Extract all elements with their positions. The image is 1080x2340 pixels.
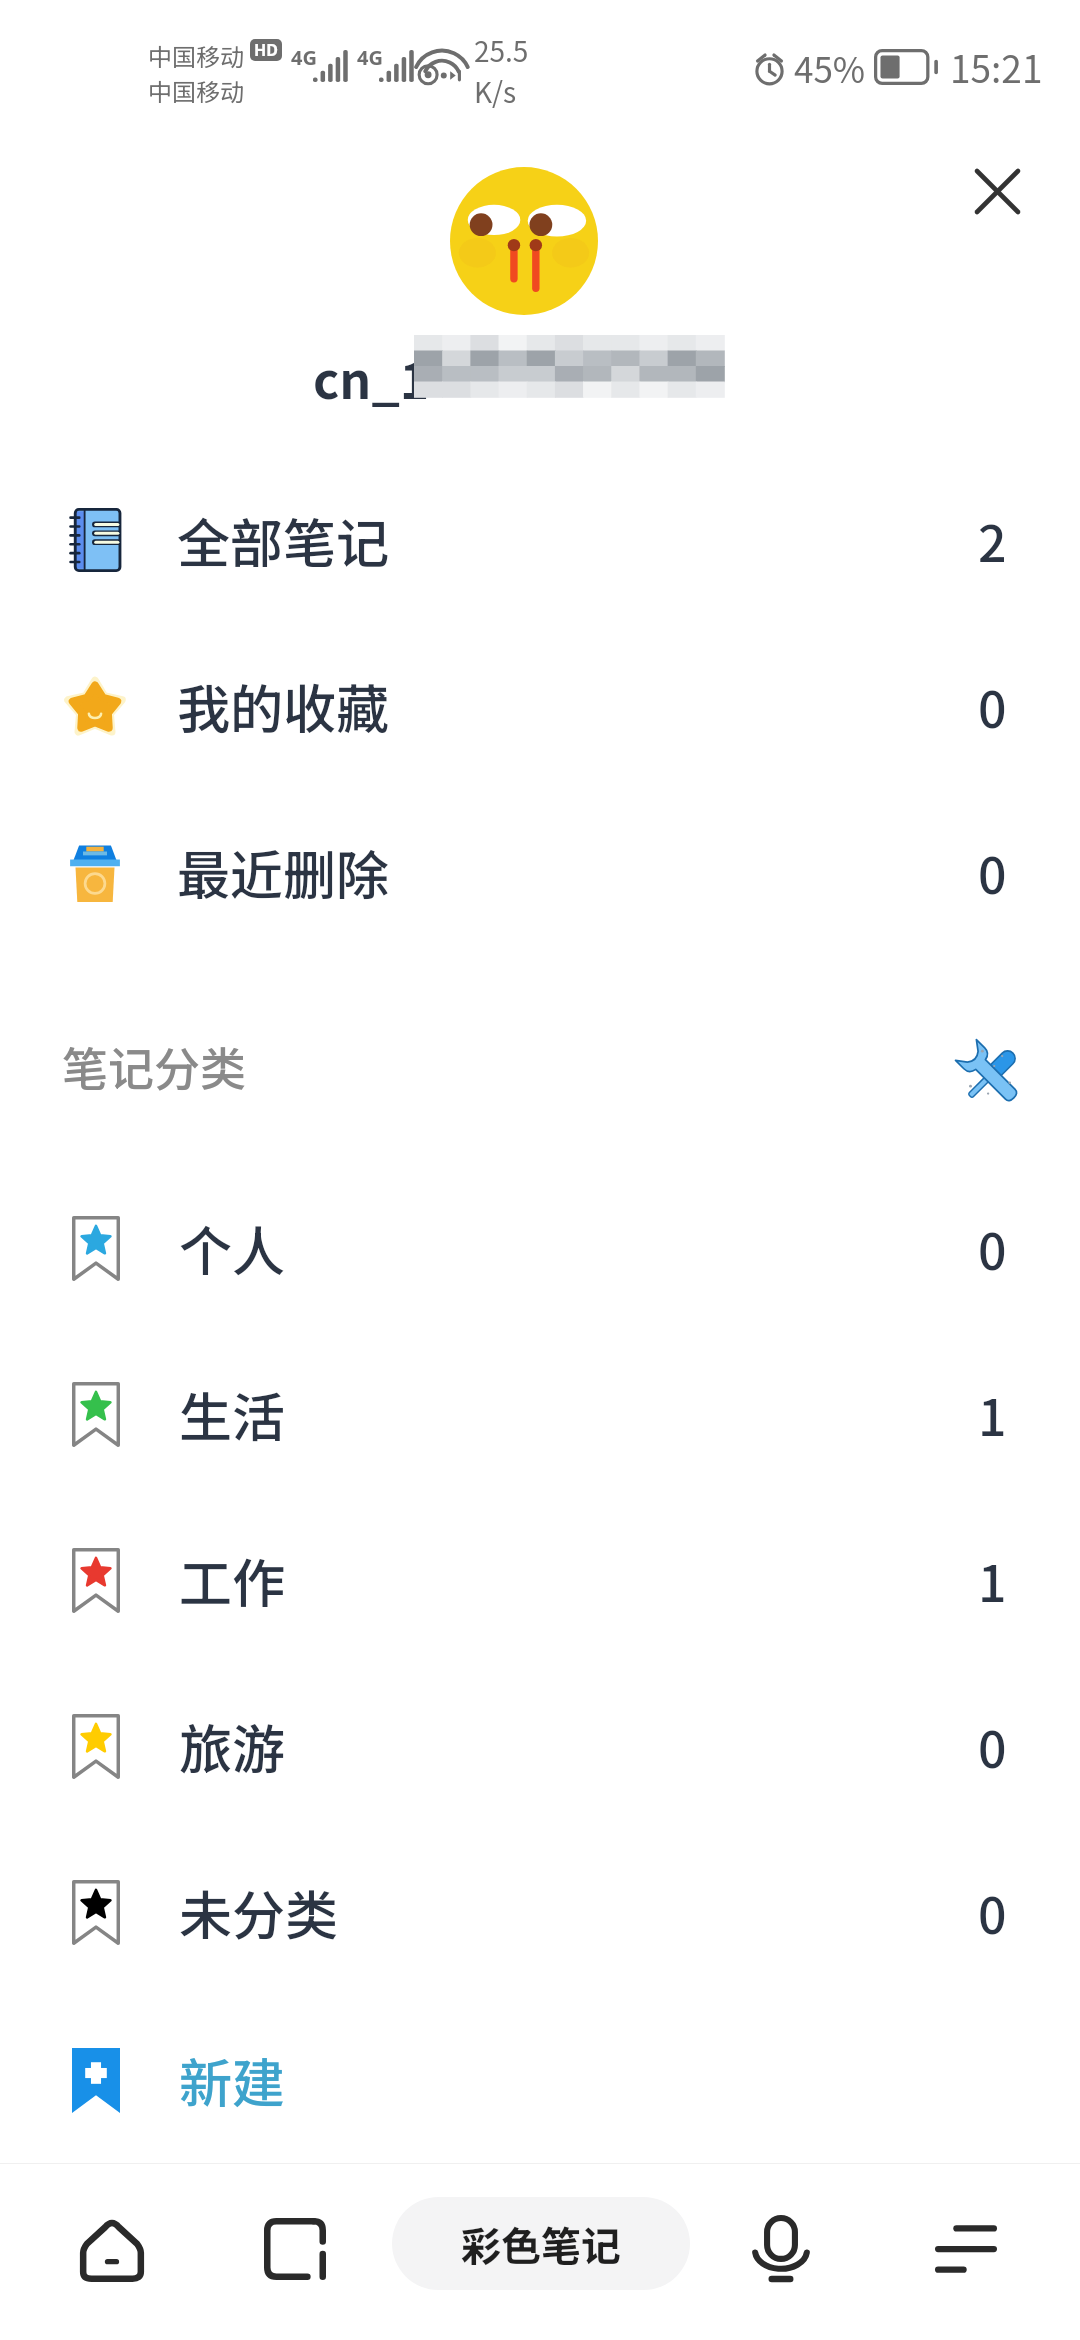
staticText: 未分类: [179, 1874, 338, 1951]
staticText: 1: [978, 1378, 1007, 1450]
staticText: 15:21: [950, 40, 1043, 94]
button[interactable]: 生活: [0, 1331, 1080, 1497]
button[interactable]: 全部笔记: [0, 457, 1080, 623]
button[interactable]: Voice search: [726, 2194, 836, 2304]
button[interactable]: 彩色笔记: [392, 2197, 690, 2290]
staticText: 25.5: [474, 30, 529, 71]
staticText: 4G: [357, 44, 383, 71]
staticText: 个人: [179, 1210, 285, 1287]
button[interactable]: Recent apps: [240, 2194, 350, 2304]
button[interactable]: 最近删除: [0, 789, 1080, 955]
staticText: 彩色笔记: [461, 2215, 621, 2273]
button[interactable]: Menu: [911, 2194, 1021, 2304]
staticText: 0: [978, 1710, 1007, 1782]
button[interactable]: 我的收藏: [0, 623, 1080, 789]
staticText: 新建: [179, 2042, 285, 2119]
staticText: K/s: [474, 71, 517, 112]
button[interactable]: Home: [57, 2194, 167, 2304]
button[interactable]: Manage categories: [936, 1020, 1046, 1130]
staticText: 45%: [794, 42, 866, 93]
staticText: 4G: [291, 44, 317, 71]
staticText: 生活: [179, 1376, 285, 1453]
staticText: 2: [978, 504, 1007, 576]
button[interactable]: 个人: [0, 1165, 1080, 1331]
staticText: 笔记分类: [62, 1033, 246, 1100]
button[interactable]: 工作: [0, 1497, 1080, 1663]
staticText: cn_1: [313, 341, 430, 413]
staticText: 1: [978, 1544, 1007, 1616]
staticText: 我的收藏: [177, 668, 389, 745]
staticText: HD: [254, 39, 278, 61]
staticText: 全部笔记: [177, 502, 389, 579]
staticText: 工作: [179, 1542, 285, 1619]
button[interactable]: 旅游: [0, 1663, 1080, 1829]
staticText: 中国移动: [148, 38, 244, 73]
button[interactable]: 未分类: [0, 1829, 1080, 1995]
staticText: 最近删除: [177, 834, 389, 911]
button[interactable]: 新建: [0, 1995, 1080, 2165]
staticText: 0: [978, 1212, 1007, 1284]
staticText: 0: [978, 1876, 1007, 1948]
button[interactable]: Close: [941, 135, 1053, 247]
staticText: 0: [978, 670, 1007, 742]
staticText: 旅游: [179, 1708, 285, 1785]
staticText: 0: [978, 836, 1007, 908]
staticText: 中国移动: [148, 73, 244, 108]
